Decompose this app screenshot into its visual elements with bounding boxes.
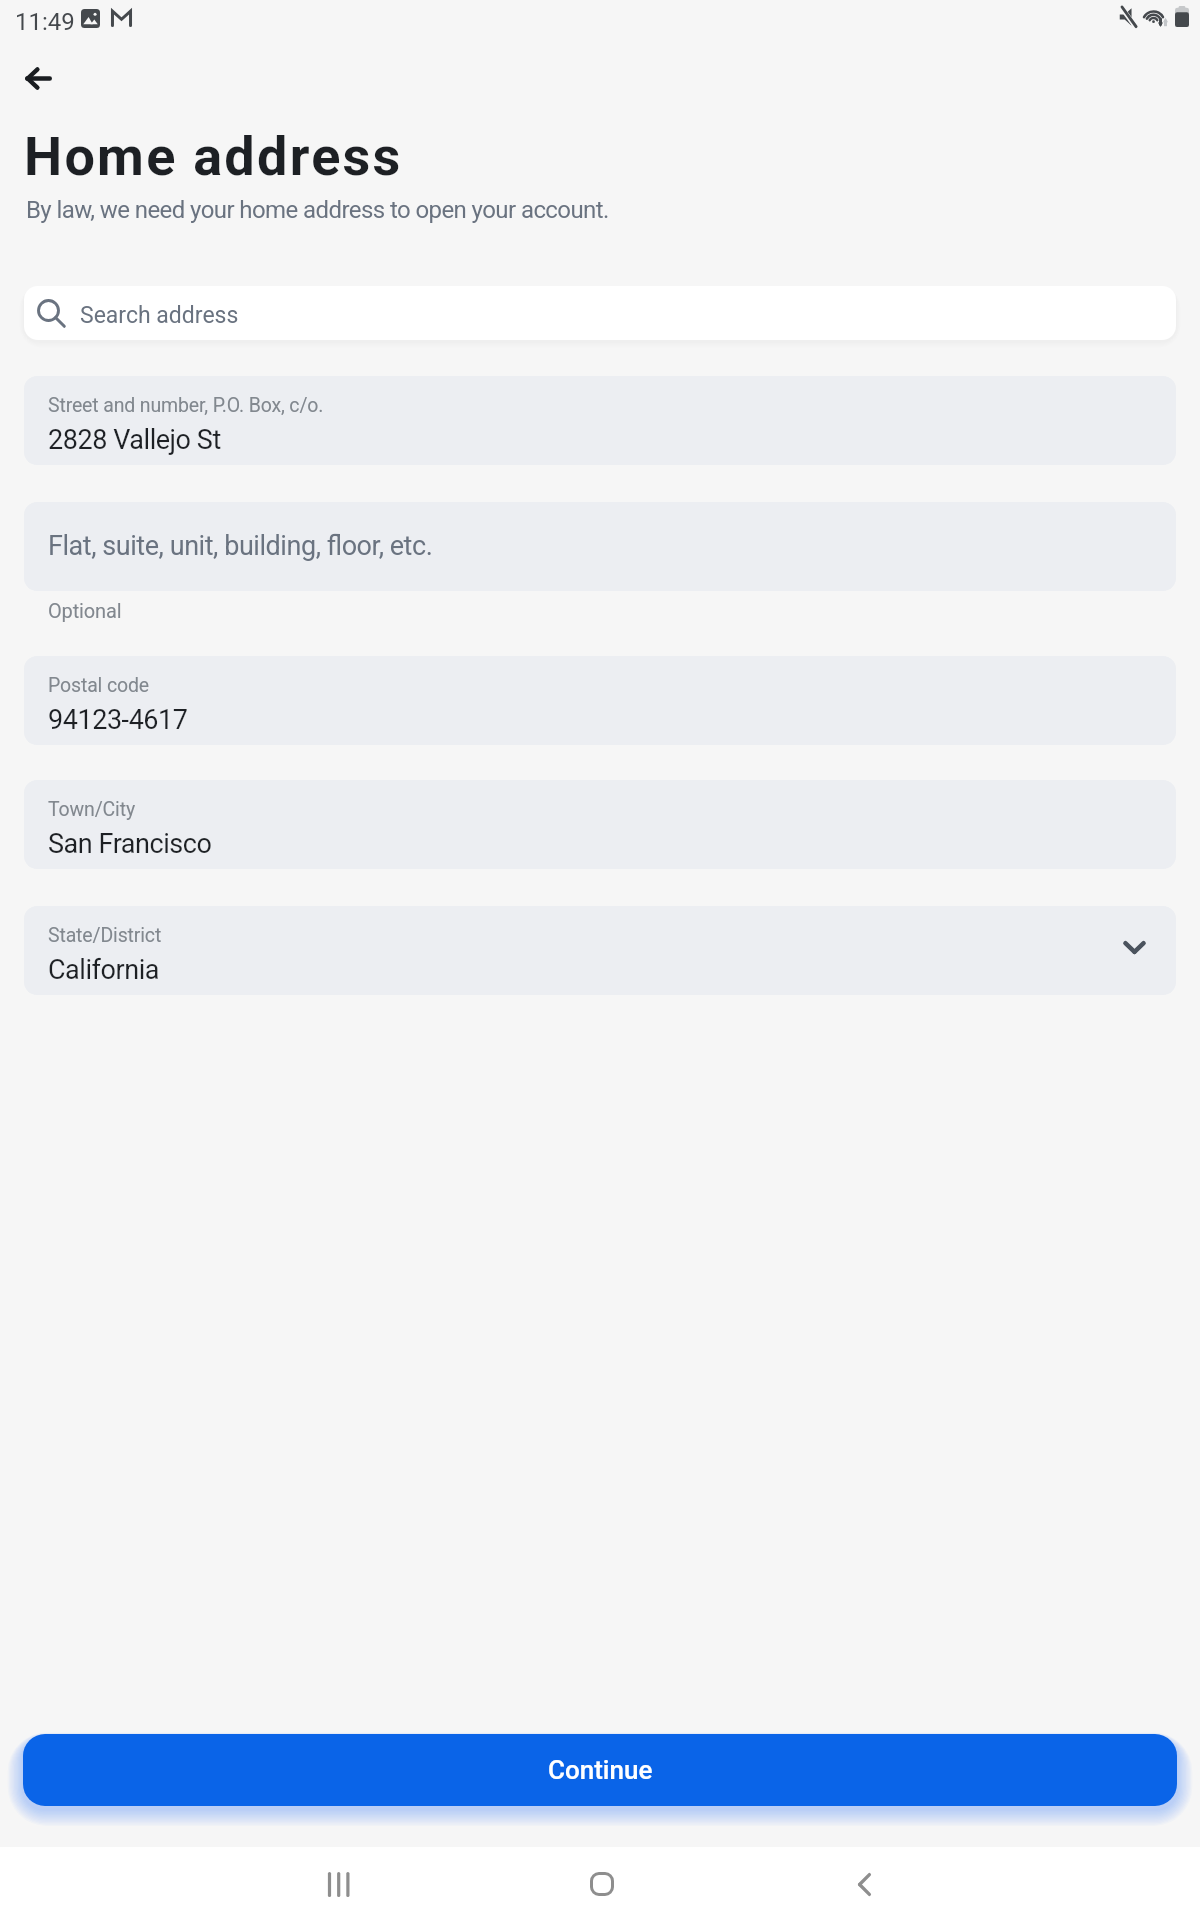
staticText: Home address xyxy=(24,125,403,188)
button[interactable]: State/District xyxy=(24,906,1176,995)
staticText: Continue xyxy=(548,1755,653,1785)
button[interactable]: Continue xyxy=(23,1734,1177,1806)
staticText: Postal code xyxy=(48,674,149,697)
staticText: Optional xyxy=(48,599,122,622)
staticText: Flat, suite, unit, building, floor, etc. xyxy=(48,530,433,562)
button[interactable]: Search address xyxy=(24,286,1176,340)
button[interactable]: Street and number, P.O. Box, c/o. xyxy=(24,376,1176,465)
button[interactable]: Recent apps xyxy=(303,1848,375,1920)
staticText: Street and number, P.O. Box, c/o. xyxy=(48,394,324,417)
button[interactable]: Town/City xyxy=(24,780,1176,869)
button[interactable]: Flat, suite, unit, building, floor, etc. xyxy=(24,502,1176,591)
button[interactable]: Postal code xyxy=(24,656,1176,745)
staticText: State/District xyxy=(48,924,162,947)
staticText: 94123-4617 xyxy=(48,704,188,736)
staticText: San Francisco xyxy=(48,828,212,860)
staticText: By law, we need your home address to ope… xyxy=(26,196,609,224)
staticText: 11:49 xyxy=(15,8,75,36)
button[interactable]: Back xyxy=(10,50,66,106)
button[interactable]: Back xyxy=(828,1848,900,1920)
staticText: 2828 Vallejo St xyxy=(48,424,221,456)
staticText: Town/City xyxy=(48,798,135,821)
staticText: Search address xyxy=(80,302,239,329)
button[interactable]: Home xyxy=(566,1848,638,1920)
staticText: California xyxy=(48,954,159,986)
